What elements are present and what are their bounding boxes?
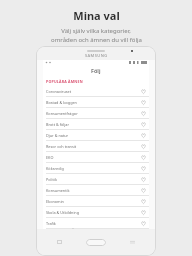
staticText: Djur & natur — [46, 133, 69, 138]
staticText: POPULÄRA ÄMNEN — [46, 79, 83, 84]
button[interactable]: Follow EKO — [141, 155, 146, 160]
staticText: Brott & följar — [46, 122, 70, 127]
button[interactable]: Köksredig — [43, 163, 149, 173]
staticText: Välj själv vilka kategorier, — [61, 27, 131, 35]
staticText: Bostad & boggen — [46, 100, 77, 105]
staticText: Politik — [46, 177, 57, 182]
staticText: Följ — [91, 67, 101, 74]
staticText: Coronaviruset — [46, 89, 72, 94]
button[interactable]: Follow Konsumentfrågor — [141, 111, 146, 116]
staticText: SAMSUNG — [85, 53, 108, 58]
button[interactable]: Follow Konsumentik — [141, 188, 146, 193]
button[interactable]: Follow Ekonomin — [141, 199, 146, 204]
button[interactable]: Trafik — [43, 218, 149, 228]
button[interactable]: Bostad & boggen — [43, 97, 149, 107]
button[interactable]: Konsumentfrågor — [43, 108, 149, 118]
button[interactable]: Follow Coronaviruset — [141, 89, 146, 94]
button[interactable]: Follow Köksredig — [141, 166, 146, 171]
staticText: EKO — [46, 155, 54, 160]
staticText: Konsumentfrågor — [46, 111, 78, 116]
button[interactable]: Recent apps — [57, 240, 62, 244]
button[interactable]: Back — [130, 240, 135, 244]
button[interactable]: Brott & följar — [43, 119, 149, 129]
staticText: Konsumentik — [46, 188, 70, 193]
button[interactable]: Follow Trafik — [141, 221, 146, 226]
button[interactable]: Djur & natur — [43, 130, 149, 140]
button[interactable]: EKO — [43, 152, 149, 162]
button[interactable]: Follow Politik — [141, 177, 146, 182]
staticText: Ekonomin — [46, 199, 64, 204]
staticText: Köksredig — [46, 166, 64, 171]
staticText: Resor och transit — [46, 144, 77, 149]
staticText: områden och ämnen du vill följa — [51, 36, 142, 44]
staticText: Skola & Utbildning — [46, 210, 80, 215]
button[interactable]: Resor och transit — [43, 141, 149, 151]
button[interactable]: Politik — [43, 174, 149, 184]
button[interactable]: Follow Resor och transit — [141, 144, 146, 149]
button[interactable]: Coronaviruset — [43, 86, 149, 96]
button[interactable]: Konsumentik — [43, 185, 149, 195]
button[interactable]: Home — [86, 239, 106, 246]
button[interactable]: Ekonomin — [43, 196, 149, 206]
button[interactable]: Follow Bostad & boggen — [141, 100, 146, 105]
staticText: Trafik — [46, 221, 56, 226]
button[interactable]: Skola & Utbildning — [43, 207, 149, 217]
button[interactable]: Follow Djur & natur — [141, 133, 146, 138]
button[interactable]: Follow Brott & följar — [141, 122, 146, 127]
button[interactable]: Follow Skola & Utbildning — [141, 210, 146, 215]
staticText: Mina val — [73, 8, 120, 23]
